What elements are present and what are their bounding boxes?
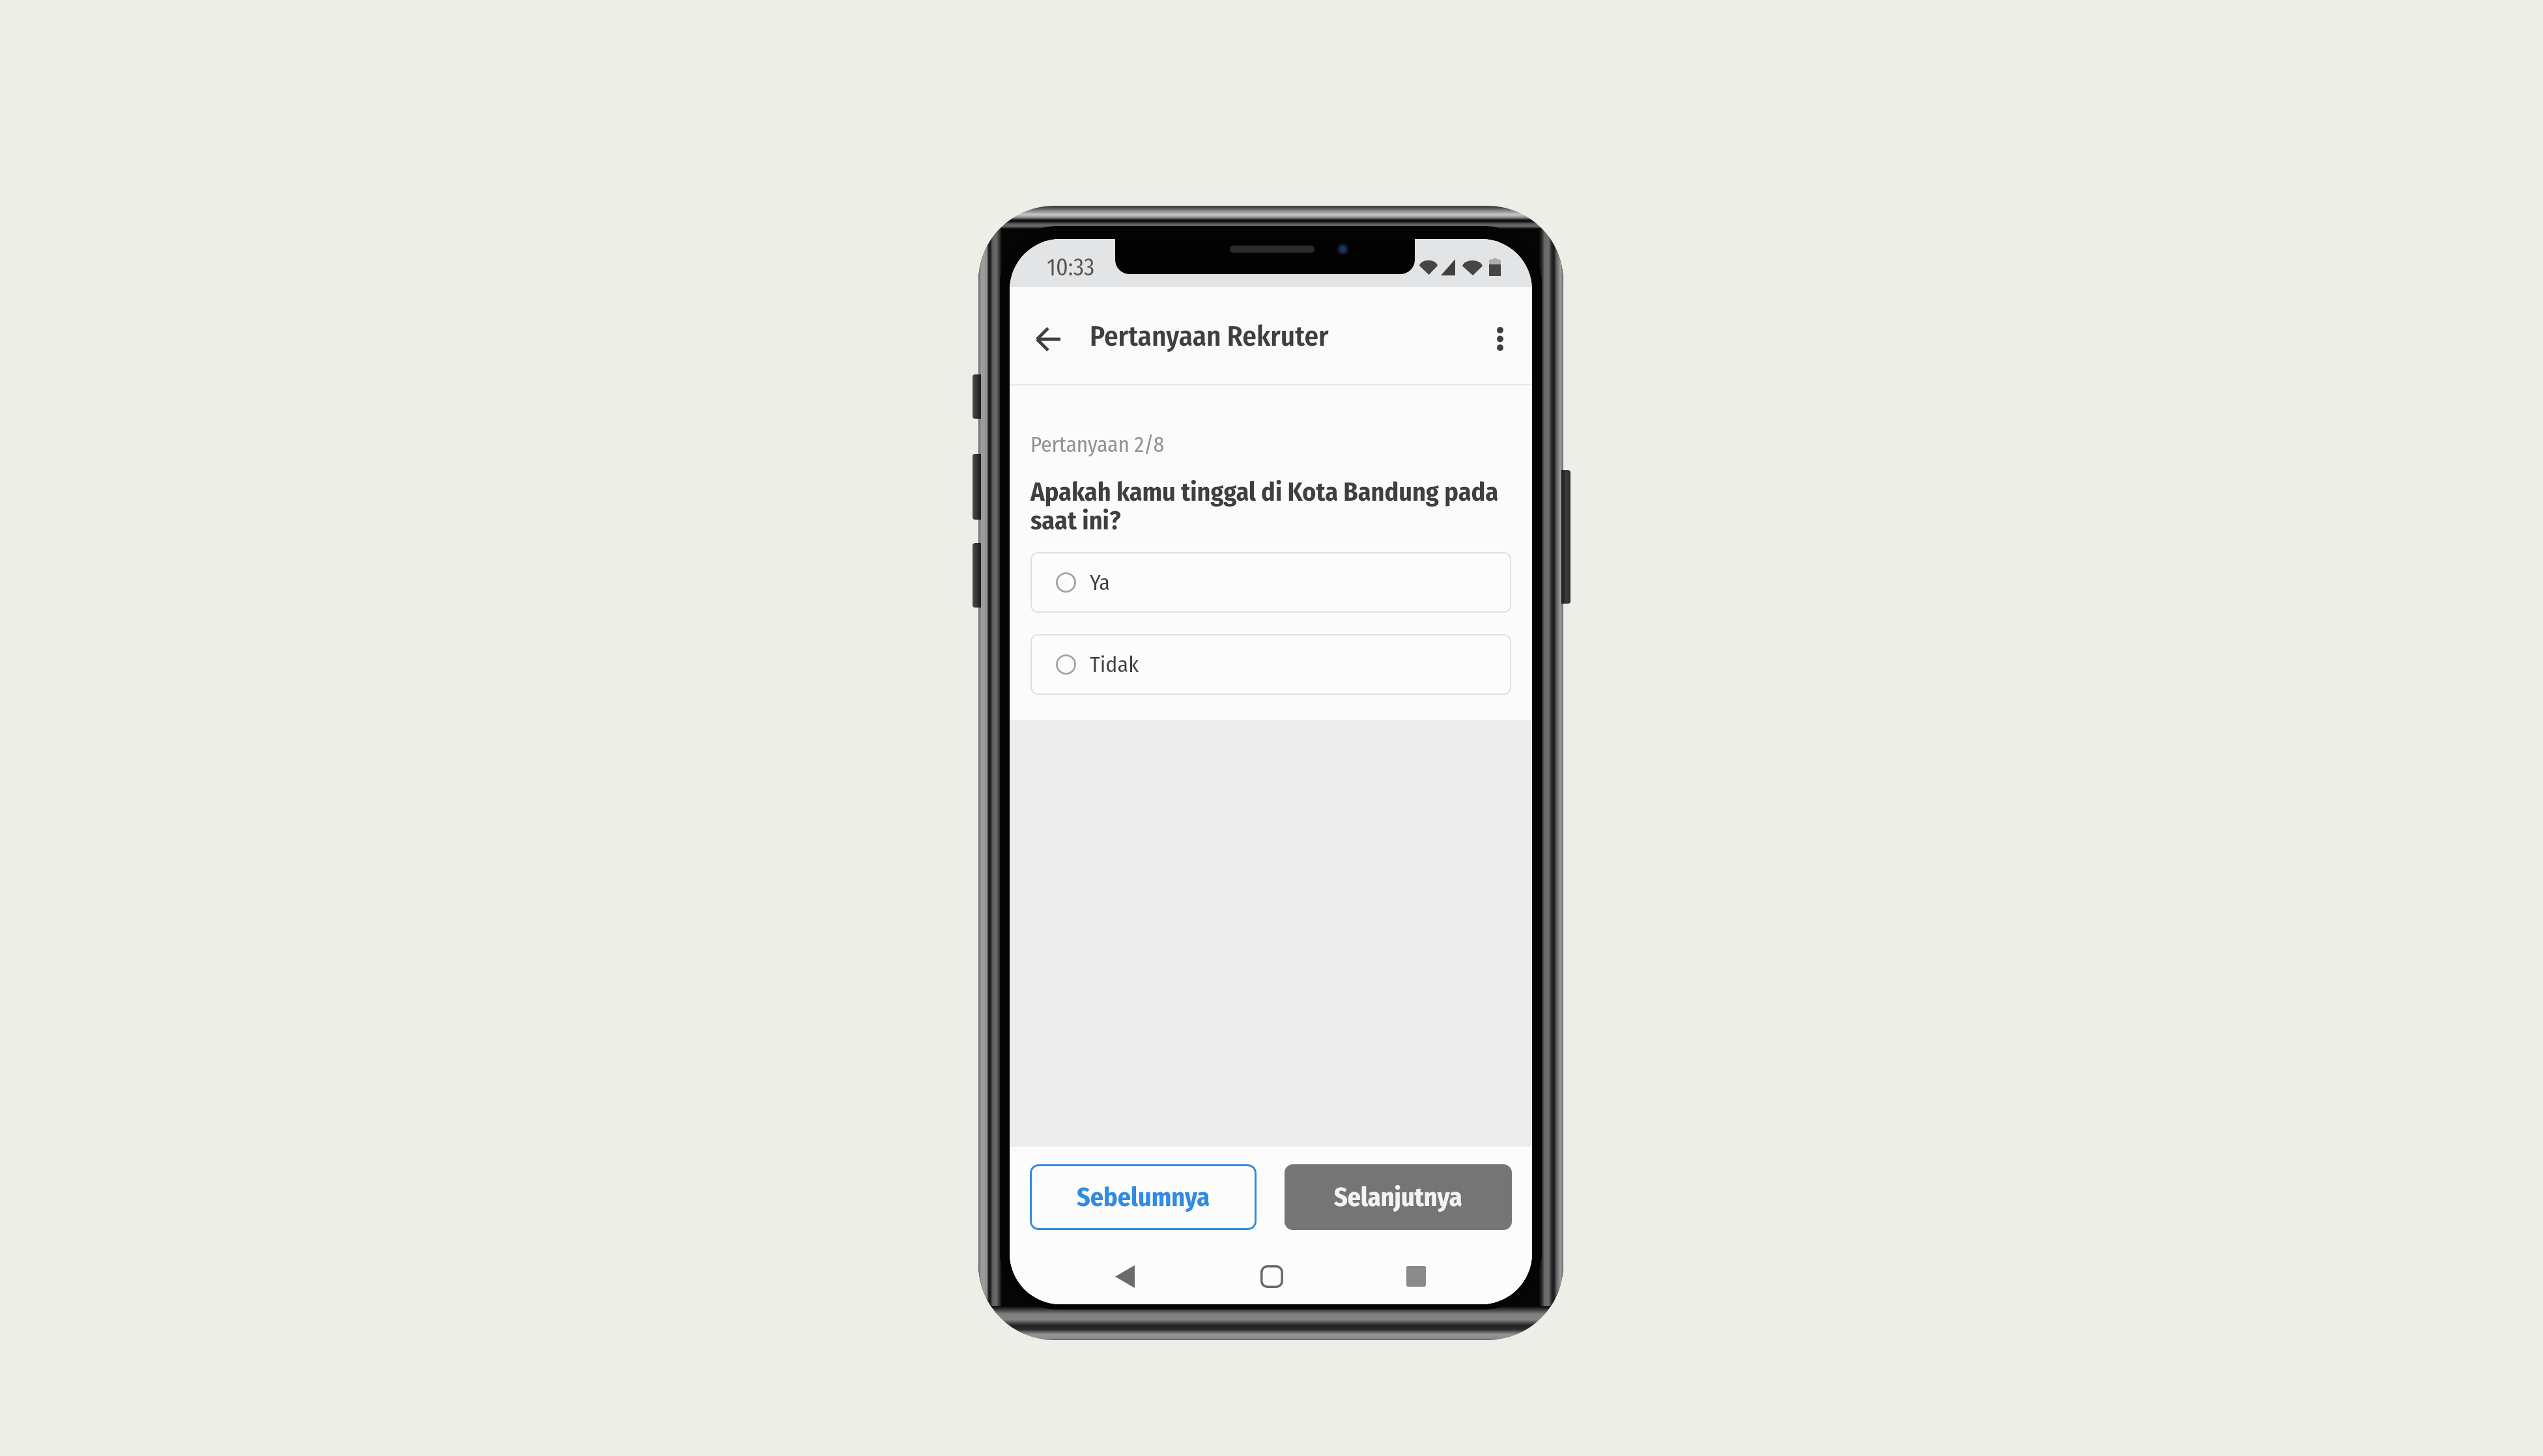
button[interactable]: Selanjutnya	[1285, 1164, 1512, 1230]
staticText: Pertanyaan 2/8	[1030, 432, 1165, 458]
button[interactable]: Sebelumnya	[1030, 1164, 1257, 1230]
staticText: Tidak	[1090, 651, 1139, 678]
button[interactable]: Home	[1245, 1253, 1298, 1300]
staticText: Selanjutnya	[1334, 1182, 1462, 1213]
staticText: Sebelumnya	[1077, 1182, 1210, 1213]
button[interactable]: Recent apps	[1390, 1253, 1442, 1300]
staticText: 10:33	[1047, 253, 1095, 281]
button[interactable]: Ya	[1030, 552, 1511, 613]
button[interactable]: Back	[1099, 1253, 1151, 1300]
staticText: Pertanyaan Rekruter	[1090, 320, 1329, 354]
button[interactable]: Tidak	[1030, 634, 1511, 695]
button[interactable]: Back	[1023, 315, 1073, 364]
staticText: Ya	[1090, 569, 1110, 596]
button[interactable]: More options	[1475, 314, 1525, 363]
staticText: Apakah kamu tinggal di Kota Bandung pada…	[1030, 477, 1511, 537]
